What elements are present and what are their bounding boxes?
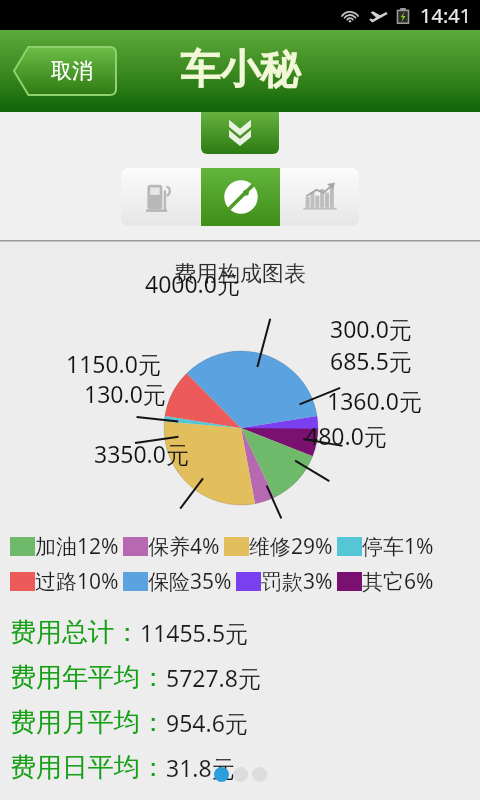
staticText: 车小秘 [180,44,300,94]
staticText: 300.0元 [330,313,412,344]
staticText: 11455.5元 [140,617,249,648]
staticText: 其它6% [362,567,434,596]
staticText: 1150.0元 [66,348,161,379]
staticText: 保养4% [148,532,220,561]
staticText: 维修29% [249,532,333,561]
button[interactable]: 加油 [121,168,201,226]
staticText: 5727.8元 [166,662,261,693]
staticText: 停车1% [362,532,434,561]
staticText: 3350.0元 [94,438,189,469]
button[interactable]: 取消 [14,47,116,95]
staticText: 罚款3% [261,567,333,596]
button[interactable]: 统计 [280,168,359,226]
button[interactable]: 第2页 [233,767,248,782]
staticText: 保险35% [148,567,232,596]
button[interactable]: 展开 [201,112,279,154]
staticText: 费用月平均： [10,706,166,739]
staticText: 130.0元 [84,378,166,409]
button[interactable]: 第3页 [252,767,267,782]
staticText: 费用总计： [10,616,140,649]
staticText: 14:41 [420,2,472,29]
staticText: 费用年平均： [10,661,166,694]
staticText: 1360.0元 [327,385,422,416]
staticText: 过路10% [35,567,119,596]
staticText: 4000.0元 [145,268,240,299]
staticText: 685.5元 [330,345,412,376]
staticText: 费用构成图表 [174,260,306,288]
button[interactable]: 第1页 [214,767,229,782]
staticText: 取消 [51,58,93,84]
button[interactable]: 图表 [201,168,280,226]
staticText: 费用日平均： [10,751,166,784]
staticText: 954.6元 [166,707,248,738]
staticText: 480.0元 [305,420,387,451]
staticText: 31.8元 [166,752,235,783]
staticText: 加油12% [35,532,119,561]
